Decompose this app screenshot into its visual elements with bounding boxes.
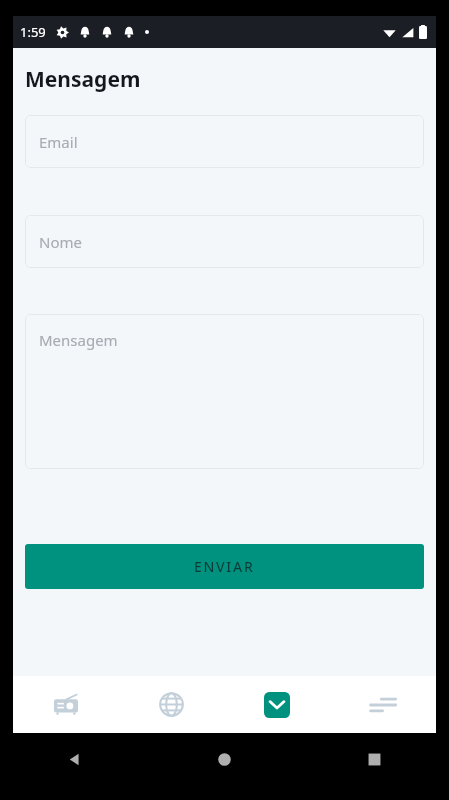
button[interactable]: Recents bbox=[299, 733, 449, 785]
staticText: Email bbox=[39, 132, 78, 152]
staticText: Mensagem bbox=[25, 65, 141, 94]
button[interactable]: Web bbox=[118, 676, 224, 733]
button[interactable]: Back bbox=[0, 733, 149, 785]
button[interactable]: Home bbox=[149, 733, 299, 785]
button[interactable]: Email bbox=[25, 115, 424, 168]
staticText: 1:59 bbox=[20, 23, 46, 41]
button[interactable]: Menu bbox=[330, 676, 436, 733]
button[interactable]: Radio bbox=[13, 676, 118, 733]
button[interactable]: Messages bbox=[224, 676, 330, 733]
staticText: ENVIAR bbox=[194, 557, 255, 576]
staticText: Nome bbox=[39, 232, 82, 252]
staticText: Mensagem bbox=[39, 330, 118, 350]
button[interactable]: Nome bbox=[25, 215, 424, 268]
button[interactable]: Mensagem bbox=[25, 314, 424, 469]
button[interactable]: ENVIAR bbox=[25, 544, 424, 589]
